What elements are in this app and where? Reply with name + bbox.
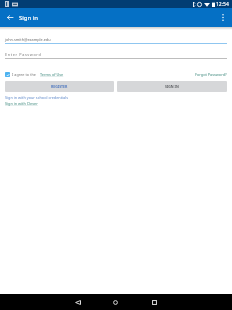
button[interactable]: Back [70, 294, 85, 310]
staticText: I agree to the [12, 72, 37, 77]
button[interactable]: Sign in with Clever [5, 101, 38, 106]
button[interactable]: Recents [147, 294, 162, 310]
staticText: Enter Password [5, 52, 42, 57]
button[interactable]: REGISTER [5, 81, 114, 92]
staticText: Sign in with your school credentials [5, 95, 68, 100]
button[interactable]: Terms of Use [40, 72, 64, 77]
button[interactable]: Forgot Password? [195, 72, 227, 77]
staticText: john.smith@example.edu [5, 37, 51, 42]
staticText: REGISTER [51, 84, 68, 89]
button[interactable]: Back [3, 11, 16, 24]
staticText: 12:54 [216, 1, 229, 8]
button[interactable] [5, 72, 10, 77]
button[interactable]: Home [108, 294, 123, 310]
button[interactable]: SIGN IN [117, 81, 227, 92]
button[interactable]: More options [216, 11, 229, 24]
staticText: Sign in [19, 14, 39, 22]
staticText: SIGN IN [165, 84, 179, 89]
